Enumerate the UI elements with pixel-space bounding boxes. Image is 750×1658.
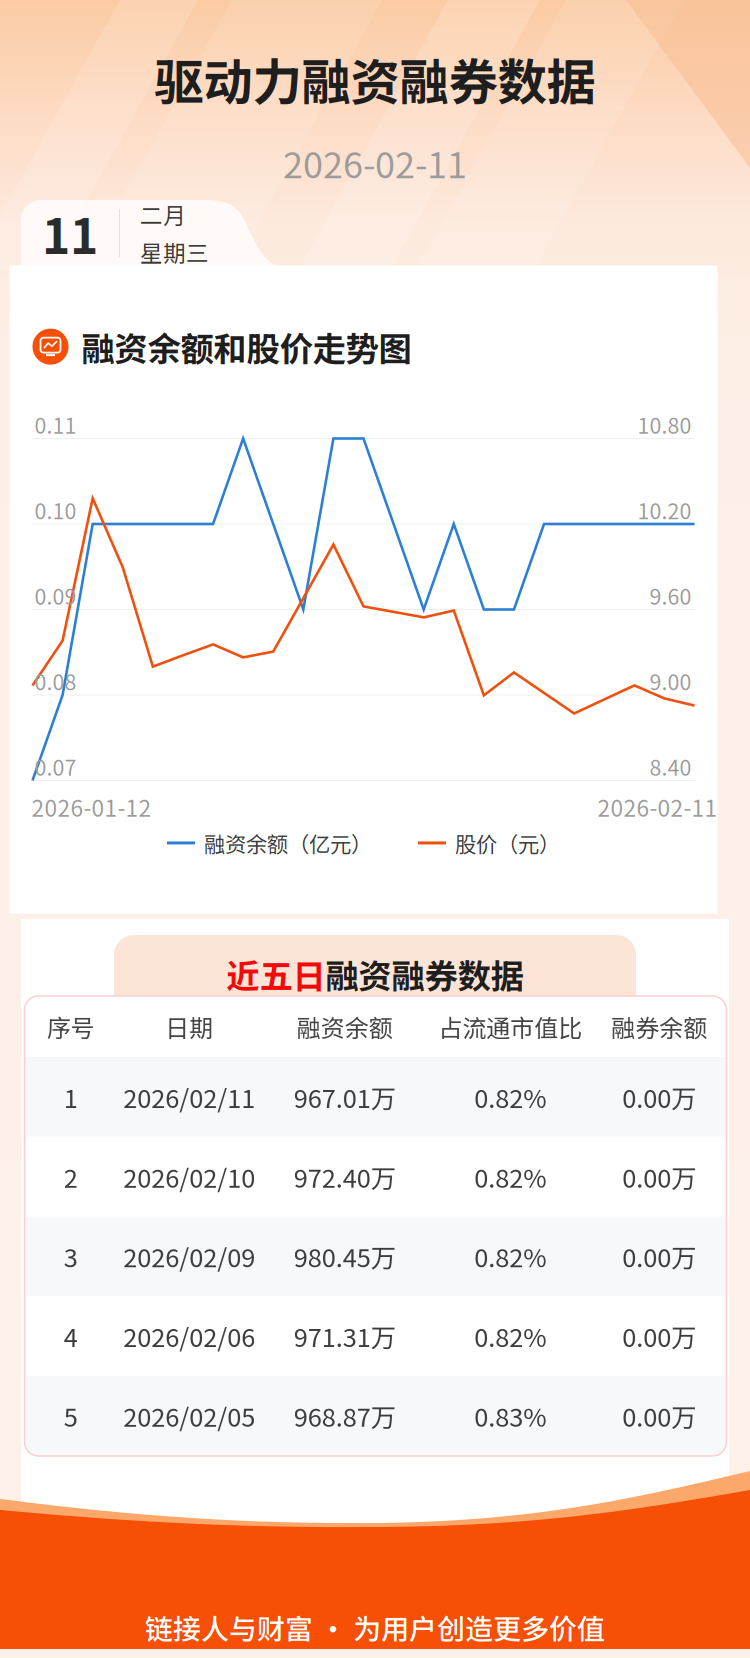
staticText: 4 bbox=[64, 1318, 78, 1354]
staticText: 0.82% bbox=[474, 1318, 546, 1354]
staticText: 股价（元） bbox=[455, 827, 560, 858]
staticText: 2026-02-11 bbox=[597, 790, 717, 823]
staticText: 8.40 bbox=[649, 751, 691, 782]
staticText: 971.31万 bbox=[294, 1318, 396, 1354]
staticText: 1 bbox=[64, 1078, 78, 1115]
staticText: 融资余额和股价走势图 bbox=[81, 322, 411, 371]
staticText: 融资余额 bbox=[297, 1009, 393, 1044]
staticText: 972.40万 bbox=[294, 1158, 396, 1195]
staticText: 11 bbox=[42, 198, 98, 268]
staticText: 968.87万 bbox=[294, 1397, 396, 1434]
staticText: 0.10 bbox=[34, 495, 76, 525]
staticText: 融资余额（亿元） bbox=[204, 827, 372, 858]
staticText: 0.07 bbox=[34, 751, 76, 782]
staticText: 0.00万 bbox=[622, 1397, 696, 1434]
staticText: 0.82% bbox=[474, 1158, 546, 1195]
staticText: 二月 bbox=[140, 198, 186, 230]
staticText: 序号 bbox=[47, 1009, 95, 1044]
staticText: 融券余额 bbox=[611, 1009, 707, 1044]
staticText: 9.60 bbox=[649, 580, 691, 611]
staticText: 2026/02/11 bbox=[123, 1078, 255, 1115]
staticText: 2026-01-12 bbox=[31, 790, 151, 823]
staticText: 0.00万 bbox=[622, 1158, 696, 1195]
staticText: 9.00 bbox=[649, 666, 691, 696]
staticText: 0.11 bbox=[34, 409, 76, 440]
staticText: 近五日 bbox=[226, 950, 325, 998]
staticText: 星期三 bbox=[140, 235, 209, 268]
staticText: 0.00万 bbox=[622, 1238, 696, 1275]
staticText: 0.00万 bbox=[622, 1078, 696, 1115]
staticText: 967.01万 bbox=[294, 1078, 396, 1115]
staticText: 驱动力融资融券数据 bbox=[154, 43, 595, 114]
staticText: 0.00万 bbox=[622, 1318, 696, 1354]
staticText: 2026/02/06 bbox=[123, 1318, 255, 1354]
staticText: 980.45万 bbox=[294, 1238, 396, 1275]
staticText: 0.08 bbox=[34, 666, 76, 696]
staticText: 10.20 bbox=[637, 495, 691, 525]
staticText: 2026/02/05 bbox=[123, 1397, 255, 1434]
staticText: 2 bbox=[64, 1158, 78, 1195]
staticText: 3 bbox=[64, 1238, 78, 1275]
staticText: 链接人与财富 · 为用户创造更多价值 bbox=[145, 1607, 605, 1647]
staticText: 2026-02-11 bbox=[283, 136, 467, 188]
staticText: 0.83% bbox=[474, 1397, 546, 1434]
staticText: 融资融券数据 bbox=[325, 950, 523, 998]
staticText: 2026/02/09 bbox=[123, 1238, 255, 1275]
staticText: 占流通市值比 bbox=[438, 1009, 582, 1044]
staticText: 10.80 bbox=[637, 409, 691, 440]
staticText: 0.82% bbox=[474, 1238, 546, 1275]
staticText: 0.82% bbox=[474, 1078, 546, 1115]
staticText: 5 bbox=[64, 1397, 78, 1434]
staticText: 0.09 bbox=[34, 580, 76, 611]
staticText: 日期 bbox=[165, 1009, 213, 1044]
staticText: 2026/02/10 bbox=[123, 1158, 255, 1195]
